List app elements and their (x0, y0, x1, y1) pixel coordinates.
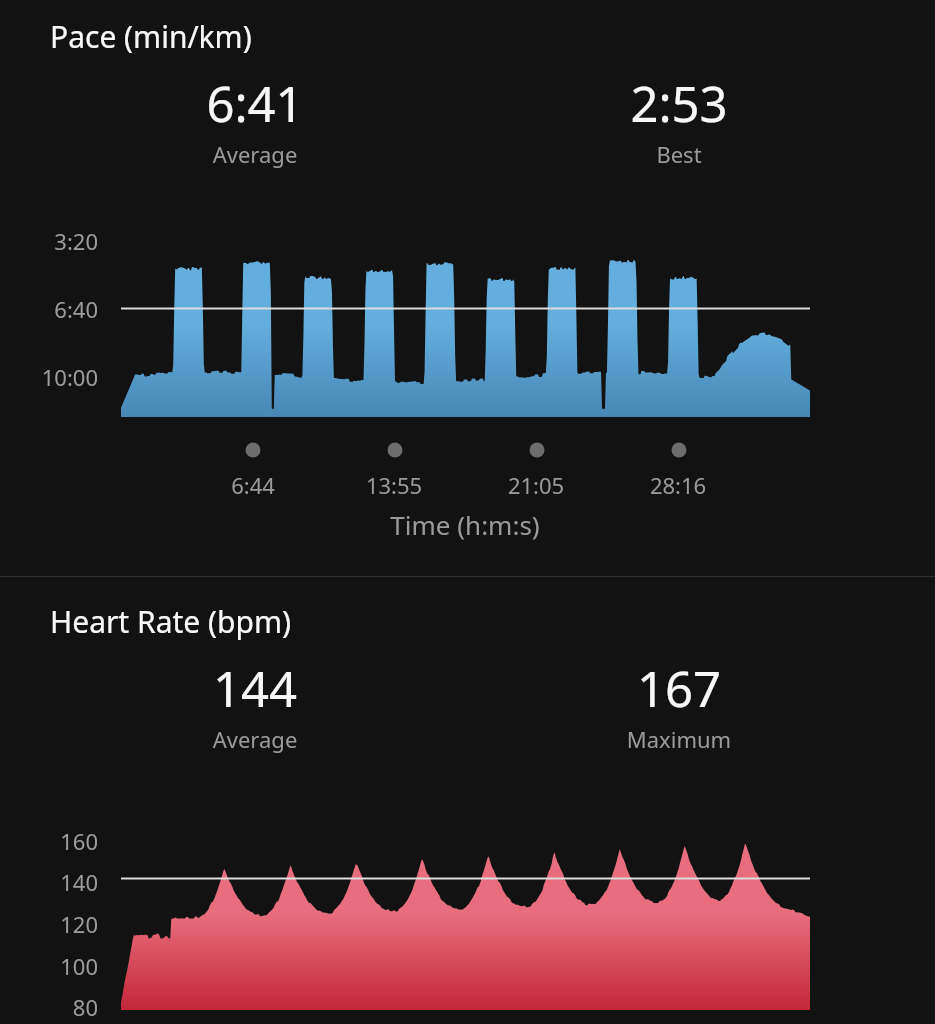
staticText: Time (h:m:s) (315, 507, 615, 542)
staticText: 160 (20, 826, 98, 856)
staticText: 21:05 (486, 470, 586, 500)
staticText: 6:40 (20, 294, 98, 324)
staticText: Maximum (569, 724, 789, 754)
staticText: Average (145, 724, 365, 754)
staticText: 100 (20, 951, 98, 981)
staticText: 28:16 (628, 470, 728, 500)
staticText: 140 (20, 867, 98, 897)
staticText: Average (145, 139, 365, 169)
staticText: 13:55 (344, 470, 444, 500)
staticText: 3:20 (20, 226, 98, 256)
button[interactable]: 6:41 (145, 70, 365, 167)
staticText: 144 (145, 655, 365, 722)
staticText: 120 (20, 909, 98, 939)
button[interactable]: 2:53 (569, 70, 789, 167)
button[interactable]: 144 (145, 655, 365, 752)
staticText: 80 (20, 992, 98, 1022)
staticText: Heart Rate (bpm) (50, 601, 291, 642)
staticText: 6:41 (145, 70, 365, 137)
staticText: 167 (569, 655, 789, 722)
staticText: 10:00 (20, 362, 98, 392)
staticText: 6:44 (203, 470, 303, 500)
button[interactable]: 167 (569, 655, 789, 752)
staticText: 2:53 (569, 70, 789, 137)
staticText: Pace (min/km) (50, 16, 252, 57)
staticText: Best (569, 139, 789, 169)
